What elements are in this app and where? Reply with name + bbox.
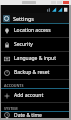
staticText: ACCOUNTS <box>4 83 24 88</box>
staticText: Add account <box>14 92 44 99</box>
staticText: SYSTEM <box>4 106 18 111</box>
button[interactable]: Add account <box>1 89 69 102</box>
staticText: Backup & reset <box>14 69 50 76</box>
button[interactable]: Backup & reset <box>1 66 69 79</box>
staticText: Location access <box>14 27 51 34</box>
button[interactable]: Language & input <box>1 52 69 65</box>
staticText: Security <box>14 41 33 48</box>
button[interactable]: Settings <box>1 13 69 23</box>
button[interactable]: Date & time <box>1 112 69 118</box>
staticText: Settings <box>13 15 34 22</box>
staticText: Date & time <box>14 112 42 118</box>
button[interactable]: Security <box>1 38 69 51</box>
button[interactable]: Location access <box>1 24 69 37</box>
staticText: Language & input <box>14 55 56 62</box>
